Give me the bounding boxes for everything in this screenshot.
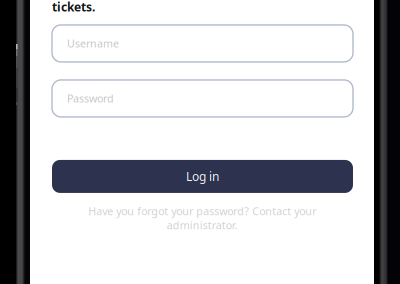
staticText: Username	[67, 36, 119, 51]
button[interactable]: Password	[52, 80, 353, 117]
button[interactable]: Log in	[52, 160, 353, 193]
staticText: tickets.	[52, 0, 95, 15]
staticText: Have you forgot your password? Contact y…	[88, 204, 316, 232]
staticText: Password	[67, 91, 114, 106]
button[interactable]: Username	[52, 25, 353, 62]
staticText: Log in	[186, 168, 219, 184]
